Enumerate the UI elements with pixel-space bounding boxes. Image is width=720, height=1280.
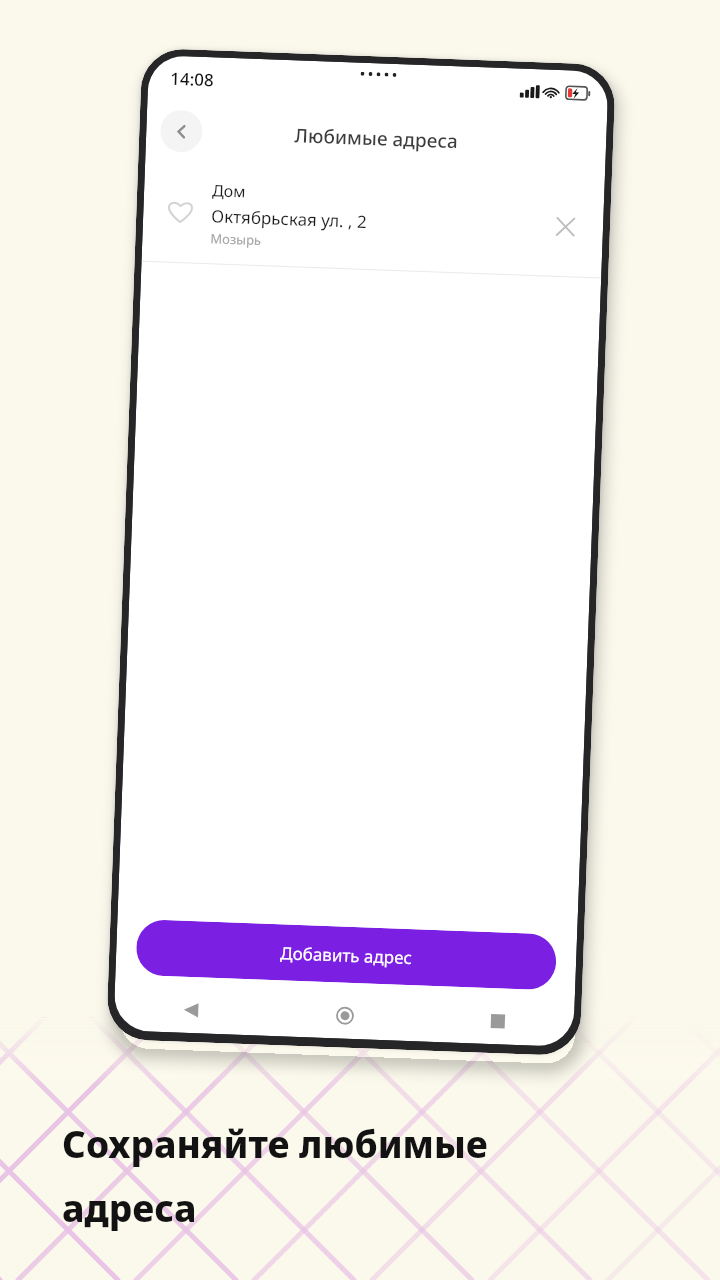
staticText: Октябрьская ул. , 2 (211, 204, 367, 233)
button[interactable]: Recents (420, 995, 575, 1047)
staticText: адреса (62, 1182, 197, 1232)
staticText: Любимые адреса (294, 122, 458, 154)
button[interactable]: Добавить адрес (135, 919, 557, 990)
button[interactable]: Back (113, 984, 269, 1036)
staticText: Дом (212, 179, 247, 202)
button[interactable]: Home (267, 990, 422, 1041)
button[interactable]: Дом (141, 161, 605, 278)
staticText: Мозырь (210, 229, 262, 249)
button[interactable]: Remove address (544, 205, 586, 247)
staticText: Сохраняйте любимые (62, 1118, 488, 1168)
button[interactable]: Back (159, 109, 203, 153)
staticText: Добавить адрес (280, 941, 413, 969)
staticText: 14:08 (170, 67, 215, 91)
